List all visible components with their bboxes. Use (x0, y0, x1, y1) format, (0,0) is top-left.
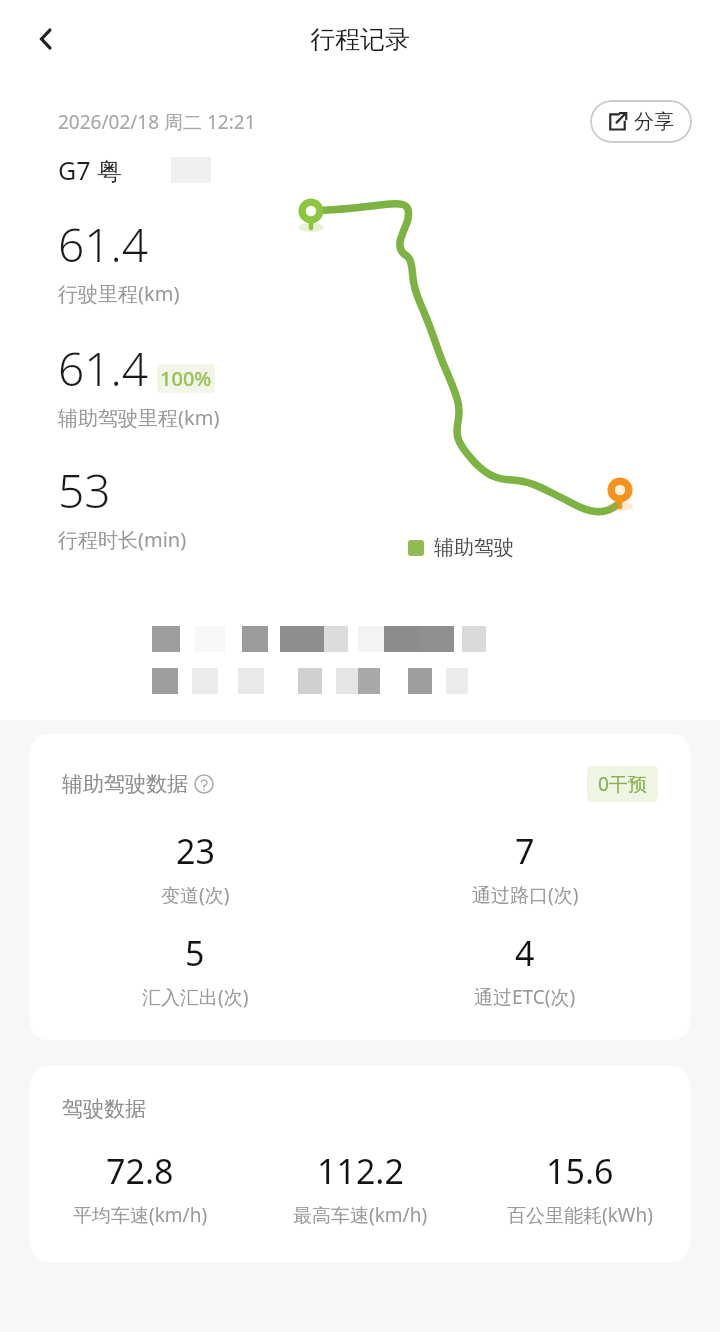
staticText: 辅助驾驶数据 (62, 771, 188, 797)
staticText: 4 (515, 930, 535, 976)
staticText: 7 (515, 828, 535, 874)
staticText: 通过ETC(次) (474, 984, 576, 1010)
staticText: 行程时长(min) (58, 526, 187, 553)
staticText: 112.2 (317, 1148, 404, 1194)
button[interactable]: 23 (30, 828, 360, 908)
staticText: 行程记录 (310, 24, 410, 55)
staticText: 平均车速(km/h) (73, 1202, 208, 1228)
button[interactable]: 4 (360, 930, 690, 1010)
staticText: 汇入汇出(次) (142, 984, 249, 1010)
staticText: 0干预 (598, 771, 647, 797)
staticText: 100% (160, 365, 212, 392)
staticText: 15.6 (546, 1148, 614, 1194)
staticText: 驾驶数据 (62, 1096, 146, 1122)
button[interactable]: Info (194, 774, 214, 794)
staticText: 最高车速(km/h) (293, 1202, 428, 1228)
staticText: 分享 (634, 109, 674, 134)
button[interactable]: 112.2 (250, 1148, 470, 1228)
button[interactable]: Back (18, 11, 74, 67)
staticText: 2026/02/18 周二 12:21 (58, 109, 256, 135)
button[interactable]: 72.8 (30, 1148, 250, 1228)
staticText: 5 (185, 930, 205, 976)
staticText: 辅助驾驶 (434, 535, 514, 560)
staticText: 百公里能耗(kWh) (507, 1202, 653, 1228)
staticText: 变道(次) (161, 882, 230, 908)
staticText: 行驶里程(km) (58, 280, 180, 307)
staticText: 61.4 (58, 337, 149, 400)
button[interactable]: 15.6 (470, 1148, 690, 1228)
staticText: G7 粤 (58, 153, 123, 187)
staticText: 23 (176, 828, 215, 874)
button[interactable]: 分享 (590, 100, 692, 143)
button[interactable]: 5 (30, 930, 360, 1010)
staticText: 72.8 (106, 1148, 174, 1194)
staticText: 通过路口(次) (472, 882, 579, 908)
staticText: 辅助驾驶里程(km) (58, 404, 220, 431)
staticText: 53 (58, 459, 111, 522)
button[interactable]: 7 (360, 828, 690, 908)
staticText: 61.4 (58, 213, 149, 276)
